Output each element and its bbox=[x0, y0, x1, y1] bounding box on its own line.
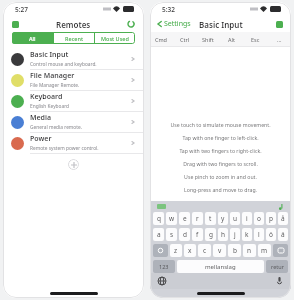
button[interactable]: z bbox=[170, 244, 182, 257]
staticText: Tap with one finger to left-click. bbox=[150, 134, 291, 141]
staticText: 123 bbox=[159, 263, 169, 270]
staticText: Tap with two fingers to right-click. bbox=[150, 147, 291, 154]
staticText: m bbox=[261, 246, 268, 255]
button[interactable]: s bbox=[166, 228, 177, 241]
button[interactable]: Keyboard bbox=[157, 204, 166, 209]
staticText: h bbox=[221, 230, 226, 239]
button[interactable]: w bbox=[166, 212, 177, 225]
staticText: Basic Input bbox=[30, 50, 69, 60]
button[interactable]: å bbox=[278, 212, 288, 225]
button[interactable]: Ctrl bbox=[173, 32, 196, 46]
staticText: 5:32 bbox=[162, 5, 175, 14]
staticText: p bbox=[269, 214, 273, 223]
button[interactable]: p bbox=[266, 212, 276, 225]
staticText: Settings bbox=[164, 19, 191, 29]
staticText: e bbox=[183, 214, 187, 223]
staticText: Remotes bbox=[56, 19, 91, 30]
button[interactable]: Refresh bbox=[126, 19, 136, 29]
button[interactable]: Shift bbox=[153, 244, 168, 257]
button[interactable]: Basic Input bbox=[3, 49, 144, 69]
button[interactable]: o bbox=[254, 212, 264, 225]
staticText: u bbox=[233, 214, 238, 223]
staticText: w bbox=[169, 214, 175, 223]
button[interactable]: retur bbox=[266, 260, 288, 273]
button[interactable]: Media bbox=[3, 112, 144, 132]
staticText: v bbox=[218, 246, 222, 255]
button[interactable]: Shift bbox=[196, 32, 219, 46]
button[interactable]: m bbox=[258, 244, 271, 257]
staticText: ä bbox=[281, 230, 285, 239]
button[interactable]: Menu bbox=[276, 21, 283, 28]
staticText: g bbox=[209, 230, 213, 239]
button[interactable]: t bbox=[205, 212, 216, 225]
button[interactable]: r bbox=[192, 212, 203, 225]
staticText: n bbox=[247, 246, 252, 255]
button[interactable]: q bbox=[153, 212, 164, 225]
button[interactable]: g bbox=[205, 228, 216, 241]
staticText: t bbox=[209, 214, 212, 223]
button[interactable]: j bbox=[230, 228, 240, 241]
button[interactable]: Most Used bbox=[95, 32, 135, 44]
button[interactable]: c bbox=[198, 244, 211, 257]
button[interactable]: Power bbox=[3, 133, 144, 153]
staticText: d bbox=[183, 230, 187, 239]
button[interactable]: Settings bbox=[157, 19, 191, 29]
staticText: Use touch to simulate mouse movement. bbox=[150, 121, 291, 128]
button[interactable]: k bbox=[242, 228, 252, 241]
staticText: File Manager Remote. bbox=[30, 82, 80, 89]
button[interactable]: f bbox=[192, 228, 203, 241]
button[interactable]: e bbox=[179, 212, 190, 225]
button[interactable]: u bbox=[230, 212, 240, 225]
staticText: k bbox=[245, 230, 249, 239]
button[interactable]: Music bbox=[278, 204, 284, 210]
staticText: Basic Input bbox=[199, 19, 243, 30]
staticText: Long-press and move to drag. bbox=[150, 186, 291, 193]
button[interactable]: y bbox=[218, 212, 228, 225]
staticText: å bbox=[281, 214, 285, 223]
staticText: Recent bbox=[65, 35, 84, 42]
staticText: f bbox=[196, 230, 199, 239]
button[interactable]: 123 bbox=[153, 260, 175, 273]
button[interactable]: d bbox=[179, 228, 190, 241]
staticText: j bbox=[234, 230, 236, 239]
staticText: mellanslag bbox=[205, 263, 236, 271]
button[interactable]: a bbox=[153, 228, 164, 241]
button[interactable]: Cmd bbox=[150, 32, 173, 46]
button[interactable]: Add bbox=[68, 159, 79, 170]
staticText: a bbox=[157, 230, 161, 239]
button[interactable]: Alt bbox=[219, 32, 243, 46]
button[interactable]: b bbox=[228, 244, 241, 257]
staticText: l bbox=[258, 230, 260, 239]
button[interactable]: v bbox=[213, 244, 226, 257]
button[interactable]: Recent bbox=[54, 32, 94, 44]
button[interactable]: Menu bbox=[12, 21, 19, 28]
button[interactable]: Esc bbox=[243, 32, 267, 46]
button[interactable]: x bbox=[184, 244, 196, 257]
staticText: Use pinch to zoom in and out. bbox=[150, 173, 291, 180]
button[interactable]: ... bbox=[267, 32, 291, 46]
button[interactable]: File Manager bbox=[3, 70, 144, 90]
button[interactable]: mellanslag bbox=[177, 260, 264, 273]
staticText: ... bbox=[277, 36, 282, 43]
button[interactable]: h bbox=[218, 228, 228, 241]
staticText: Shift bbox=[202, 36, 214, 43]
staticText: Keyboard bbox=[30, 92, 63, 102]
staticText: Cmd bbox=[155, 36, 168, 43]
staticText: English Keyboard bbox=[30, 103, 69, 110]
staticText: retur bbox=[271, 263, 284, 270]
button[interactable]: Dictate bbox=[277, 277, 282, 285]
staticText: Power bbox=[30, 134, 52, 144]
staticText: s bbox=[170, 230, 174, 239]
button[interactable]: Change language bbox=[158, 277, 166, 285]
staticText: Most Used bbox=[101, 35, 129, 42]
button[interactable]: ä bbox=[278, 228, 288, 241]
button[interactable]: Backspace bbox=[273, 244, 288, 257]
staticText: ö bbox=[269, 230, 273, 239]
button[interactable]: n bbox=[243, 244, 256, 257]
button[interactable]: Keyboard bbox=[3, 91, 144, 111]
button[interactable]: i bbox=[242, 212, 252, 225]
button[interactable]: l bbox=[254, 228, 264, 241]
button[interactable]: All bbox=[12, 32, 53, 44]
staticText: Esc bbox=[251, 36, 260, 43]
button[interactable]: ö bbox=[266, 228, 276, 241]
